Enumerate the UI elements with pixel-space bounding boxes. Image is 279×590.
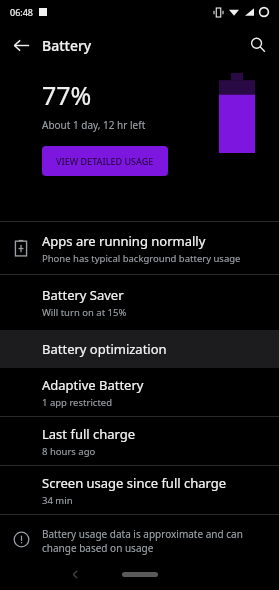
button[interactable]: VIEW DETAILED USAGE bbox=[42, 146, 168, 176]
button[interactable]: Back bbox=[62, 561, 88, 587]
staticText: VIEW DETAILED USAGE bbox=[56, 155, 154, 167]
staticText: 8 hours ago bbox=[42, 445, 96, 458]
button[interactable]: Apps are running normally bbox=[0, 222, 279, 274]
staticText: Screen usage since full charge bbox=[42, 474, 227, 492]
staticText: Will turn on at 15% bbox=[42, 306, 127, 319]
button[interactable]: Battery optimization bbox=[0, 330, 279, 368]
staticText: Battery Saver bbox=[42, 286, 124, 304]
staticText: 1 app restricted bbox=[42, 396, 113, 409]
staticText: Battery optimization bbox=[42, 340, 167, 358]
staticText: 77% bbox=[42, 78, 92, 112]
staticText: 06:48 bbox=[10, 6, 34, 18]
staticText: Adaptive Battery bbox=[42, 376, 144, 394]
button[interactable]: Adaptive Battery bbox=[0, 368, 279, 416]
staticText: Battery usage data is approximate and ca… bbox=[42, 527, 261, 555]
button[interactable]: Last full charge bbox=[0, 417, 279, 465]
button[interactable]: Home bbox=[122, 572, 158, 577]
button[interactable]: Screen usage since full charge bbox=[0, 466, 279, 514]
staticText: About 1 day, 12 hr left bbox=[42, 118, 146, 132]
button[interactable]: Search bbox=[237, 24, 279, 66]
button[interactable]: Back bbox=[0, 24, 42, 66]
staticText: 34 min bbox=[42, 494, 73, 507]
staticText: Apps are running normally bbox=[42, 232, 206, 250]
staticText: Battery bbox=[42, 36, 92, 55]
button[interactable]: Battery Saver bbox=[0, 275, 279, 330]
staticText: Phone has typical background battery usa… bbox=[42, 252, 241, 265]
staticText: Last full charge bbox=[42, 425, 136, 443]
